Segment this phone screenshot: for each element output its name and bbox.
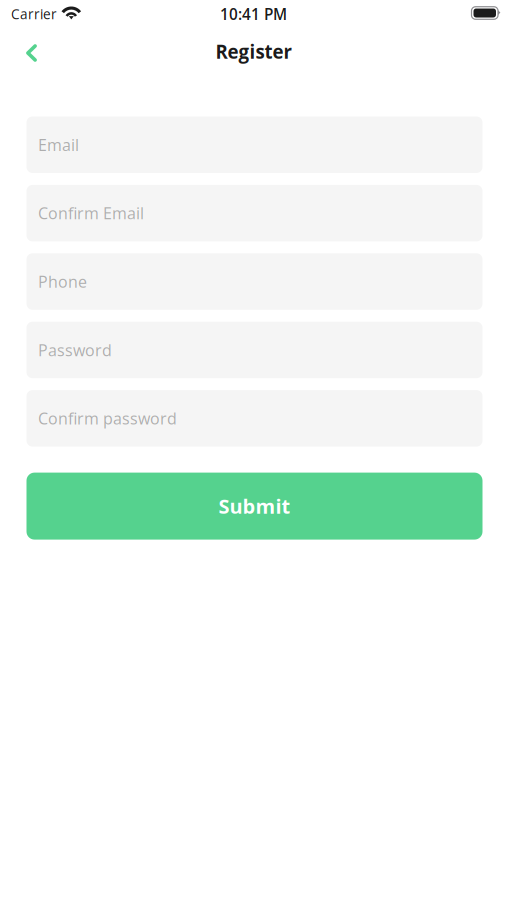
button[interactable]: Password — [26, 322, 482, 378]
staticText: Register — [215, 39, 291, 64]
button[interactable]: Submit — [26, 473, 482, 540]
button[interactable]: Confirm Email — [26, 185, 482, 241]
staticText: Password — [38, 339, 112, 361]
staticText: Email — [38, 134, 79, 156]
staticText: Phone — [38, 271, 87, 292]
button[interactable]: Back — [10, 31, 52, 71]
staticText: Confirm Email — [38, 202, 144, 224]
button[interactable]: Phone — [26, 253, 482, 310]
staticText: Confirm password — [38, 407, 177, 429]
staticText: 10:41 PM — [220, 4, 287, 24]
staticText: Carrier — [11, 5, 57, 23]
button[interactable]: Confirm password — [26, 390, 482, 447]
staticText: Submit — [218, 492, 290, 520]
button[interactable]: Email — [26, 116, 482, 173]
